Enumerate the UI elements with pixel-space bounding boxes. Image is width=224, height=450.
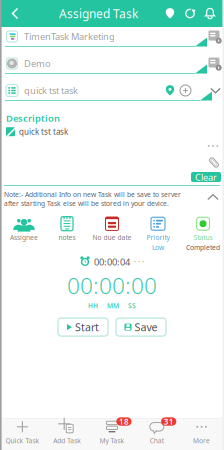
staticText: 31 — [164, 416, 174, 427]
button[interactable]: Quick Task — [0, 418, 45, 450]
button[interactable]: 31 — [134, 418, 179, 450]
staticText: Completed — [186, 243, 220, 252]
staticText: notes — [58, 233, 75, 242]
staticText: Assignee — [10, 233, 38, 242]
staticText: Start — [75, 320, 99, 334]
staticText: 18 — [119, 416, 129, 427]
staticText: 00:00:04 — [94, 256, 130, 268]
staticText: Description — [6, 112, 60, 124]
button[interactable]: notes — [46, 216, 88, 250]
button[interactable]: Add Task — [45, 418, 90, 450]
button[interactable]: More options — [205, 140, 221, 152]
staticText: 00:00:00 — [67, 270, 157, 300]
button[interactable]: No due date — [88, 216, 136, 250]
staticText: Clear — [195, 171, 217, 183]
staticText: · · · — [134, 257, 144, 267]
staticText: No due date — [92, 233, 131, 242]
staticText: Chat — [150, 436, 164, 445]
button[interactable]: Attach — [207, 157, 221, 168]
button[interactable]: Back — [3, 0, 27, 27]
button[interactable]: Assignee — [2, 216, 46, 250]
button[interactable]: Location — [160, 0, 180, 27]
staticText: Priority — [146, 233, 169, 242]
staticText: My Task — [99, 436, 124, 445]
staticText: quick tst task — [24, 84, 78, 97]
staticText: Low — [152, 243, 164, 252]
staticText: SS — [128, 301, 136, 310]
staticText: quick tst task — [19, 126, 68, 137]
staticText: Status — [193, 233, 212, 242]
staticText: More — [193, 436, 210, 445]
staticText: Note:- Additional Info on new Task will … — [4, 190, 181, 208]
button[interactable]: Start — [58, 318, 108, 336]
button[interactable]: Notifications — [200, 0, 220, 27]
button[interactable]: Collapse — [204, 190, 222, 204]
button[interactable]: More — [179, 418, 224, 450]
button[interactable]: Status — [180, 216, 224, 250]
button[interactable]: 18 — [90, 418, 134, 450]
staticText: Save — [134, 320, 157, 334]
staticText: Demo — [24, 57, 51, 70]
button[interactable]: Refresh — [180, 0, 200, 27]
staticText: HH — [88, 301, 98, 310]
staticText: MM — [107, 301, 119, 310]
button[interactable]: Save — [116, 318, 166, 336]
staticText: Assigned Task — [59, 5, 138, 21]
button[interactable]: Clear — [191, 172, 221, 182]
staticText: TimenTask Marketing — [24, 30, 115, 43]
staticText: Add Task — [53, 436, 81, 445]
staticText: Quick Task — [5, 436, 39, 445]
button[interactable]: Priority — [136, 216, 180, 250]
